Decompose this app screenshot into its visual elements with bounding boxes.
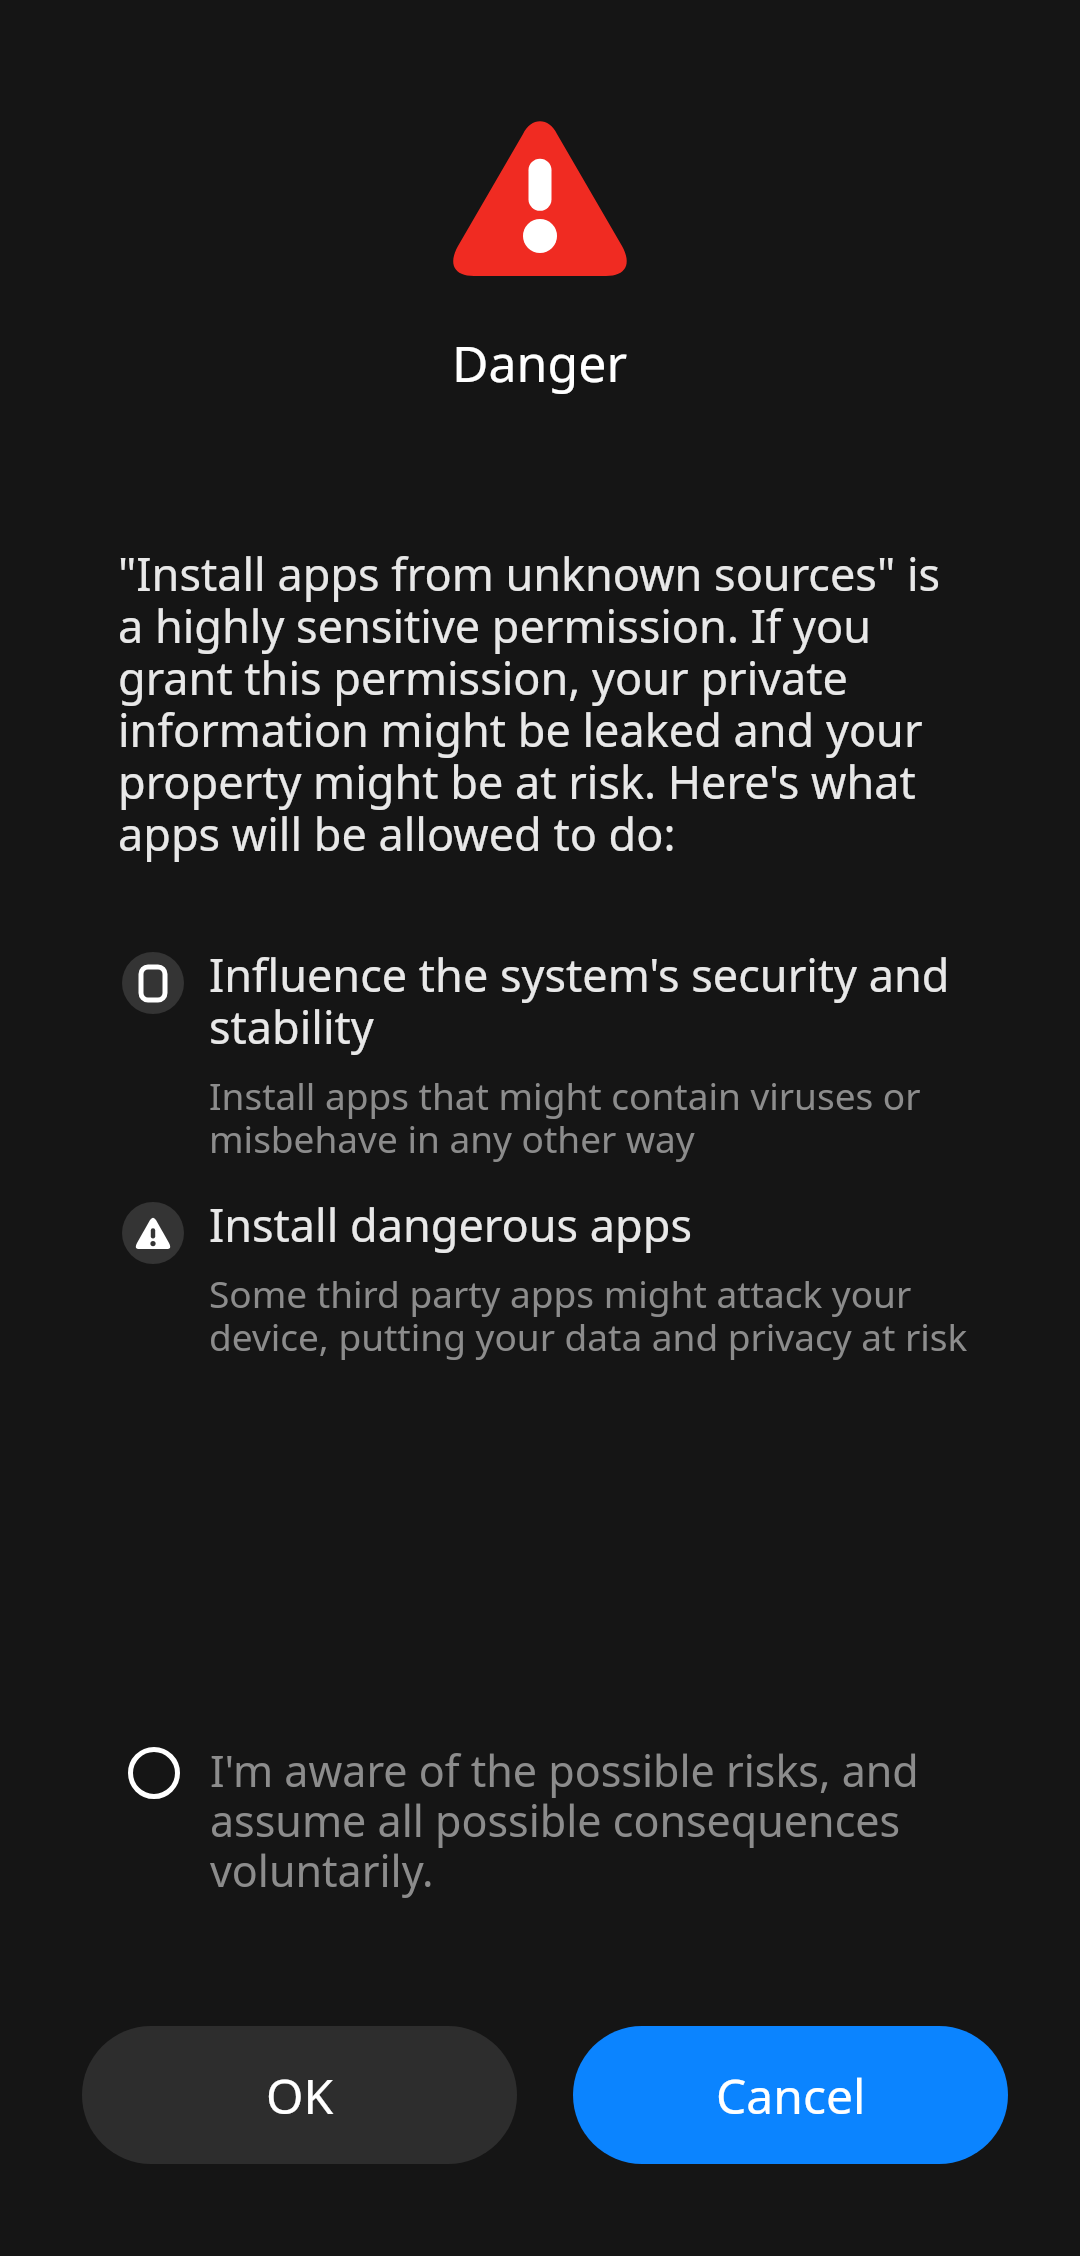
staticText: Danger xyxy=(452,329,628,397)
staticText: OK xyxy=(266,2063,334,2128)
staticText: Install apps that might contain viruses … xyxy=(209,1070,970,1164)
staticText: Cancel xyxy=(716,2063,866,2128)
button[interactable]: OK xyxy=(82,2026,517,2164)
staticText: Some third party apps might attack your … xyxy=(209,1268,970,1362)
staticText: Influence the system's security and stab… xyxy=(209,944,970,1057)
button[interactable]: I'm aware of the possible risks, and ass… xyxy=(0,1741,1080,1900)
staticText: I'm aware of the possible risks, and ass… xyxy=(210,1741,972,1900)
other: Dangerous apps xyxy=(122,1202,184,1264)
staticText: Install dangerous apps xyxy=(209,1194,692,1255)
staticText: "Install apps from unknown sources" is a… xyxy=(118,543,972,864)
other: System stability xyxy=(122,952,184,1014)
button[interactable]: Cancel xyxy=(573,2026,1008,2164)
